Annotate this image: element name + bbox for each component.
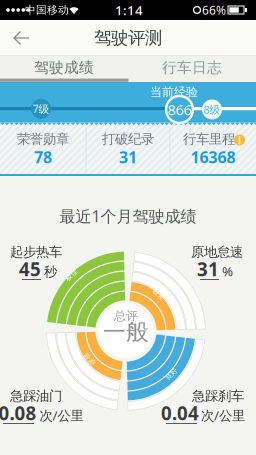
staticText: 极佳 (64, 271, 78, 279)
button[interactable] (0, 20, 40, 56)
button[interactable]: 驾驶成绩 (0, 56, 128, 79)
staticText: 866 (167, 100, 191, 119)
staticText: 31 (197, 257, 219, 281)
staticText: 较差 (152, 290, 166, 299)
staticText: 0.04 (161, 401, 199, 425)
staticText: 7级 (32, 102, 49, 116)
staticText: i (238, 133, 241, 147)
staticText: % (222, 262, 233, 280)
staticText: 驾驶成绩 (34, 58, 94, 76)
staticText: 次/公里 (39, 406, 83, 424)
staticText: 66% (202, 2, 226, 18)
button[interactable]: 行车日志 (128, 56, 256, 79)
staticText: 良好 (164, 370, 178, 378)
staticText: 当前经验 (150, 85, 198, 99)
staticText: 0.08 (0, 401, 36, 425)
staticText: 较差 (83, 355, 97, 363)
staticText: 打破纪录 (102, 131, 154, 147)
button[interactable]: i (234, 134, 245, 145)
staticText: 次/公里 (201, 406, 245, 424)
staticText: 1:14 (115, 1, 143, 19)
staticText: 急踩刹车 (192, 388, 244, 404)
staticText: 8级 (203, 102, 220, 117)
staticText: 31 (119, 146, 137, 168)
staticText: 总评 (114, 309, 138, 323)
staticText: 原地怠速 (191, 244, 243, 260)
staticText: 45 (19, 257, 41, 281)
staticText: 最近1个月驾驶成绩 (59, 205, 196, 227)
staticText: 起步热车 (10, 244, 62, 260)
staticText: 行车里程 (183, 131, 235, 147)
staticText: 秒 (44, 264, 57, 280)
staticText: 驾驶评测 (94, 27, 162, 49)
staticText: 78 (34, 146, 52, 168)
staticText: 行车日志 (162, 58, 222, 76)
staticText: 16368 (190, 146, 235, 168)
staticText: 一般 (103, 318, 149, 346)
staticText: 中国移动 (25, 3, 69, 16)
staticText: 急踩油门 (10, 388, 62, 404)
staticText: 荣誉勋章 (17, 131, 69, 147)
